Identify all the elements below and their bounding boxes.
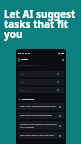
button[interactable]: Task 2 — [18, 79, 64, 85]
staticText: Things — [21, 58, 29, 61]
staticText: Let AI suggest tasks that fit you — [4, 7, 77, 41]
button[interactable]: Take a short walk to reset your focus — [18, 132, 64, 139]
staticText: Reply to the email from the team lead — [20, 105, 58, 108]
button[interactable]: Task 1 — [18, 71, 64, 77]
staticText: Suggestions — [22, 98, 34, 101]
button[interactable]: Prepare a small summary of the report fo… — [18, 121, 64, 130]
button[interactable]: Reply to the email from the team lead — [18, 103, 64, 110]
staticText: Plan tomorrow morning schedule — [20, 114, 58, 117]
staticText: Prepare a small summary of the report fo… — [20, 123, 58, 129]
staticText: Task 2 — [20, 81, 26, 84]
staticText: Today, Thursday, May 19 — [18, 64, 42, 67]
staticText: Task 1 — [20, 73, 26, 76]
button[interactable]: Task 3 — [18, 87, 64, 93]
button[interactable]: Plan tomorrow morning schedule — [18, 112, 64, 119]
staticText: Task 3 — [20, 89, 26, 92]
staticText: Take a short walk to reset your focus — [20, 134, 58, 137]
